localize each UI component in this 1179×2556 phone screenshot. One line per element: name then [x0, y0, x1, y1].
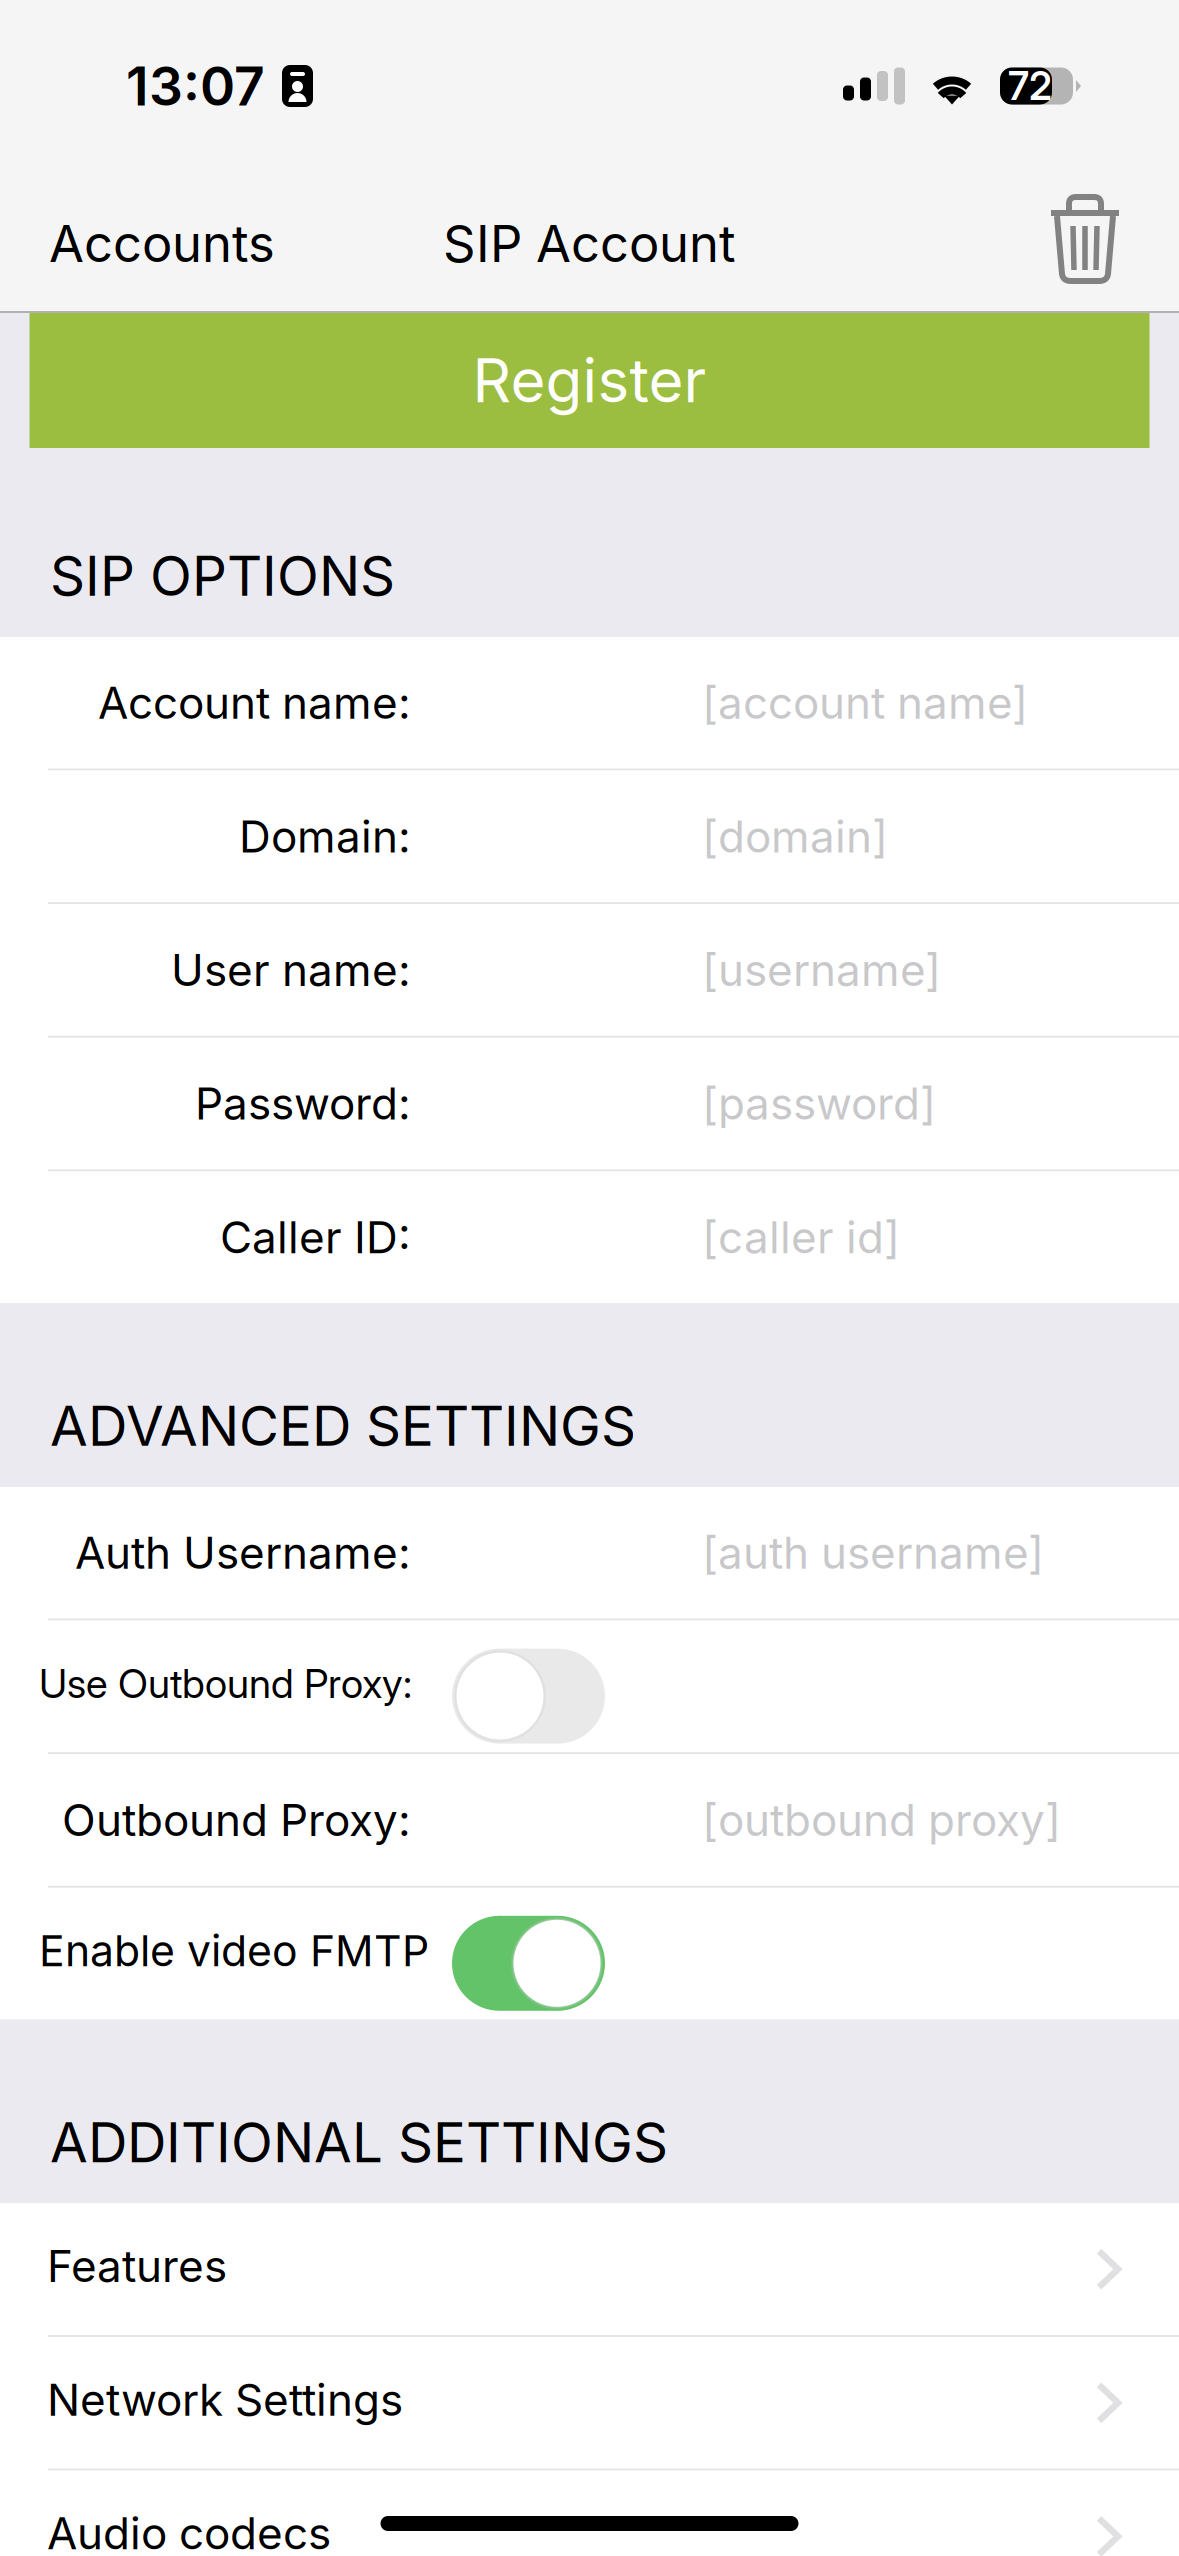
staticText: Network Settings — [47, 2373, 403, 2426]
staticText: Audio codecs — [47, 2507, 331, 2556]
staticText: [account name] — [702, 676, 1028, 729]
button[interactable]: Enable video FMTP — [0, 1888, 1179, 2019]
staticText: [domain] — [702, 810, 888, 863]
staticText: Auth Username: — [75, 1526, 411, 1579]
staticText: 72 — [1008, 63, 1052, 109]
staticText: [caller id] — [702, 1211, 900, 1264]
staticText: Accounts — [49, 213, 275, 274]
button[interactable]: Features — [0, 2203, 1179, 2335]
staticText: Features — [47, 2239, 227, 2293]
staticText: ADDITIONAL SETTINGS — [50, 2109, 668, 2175]
staticText: [username] — [702, 943, 941, 997]
button[interactable]: Use Outbound Proxy: — [0, 1621, 1179, 1752]
staticText: Domain: — [239, 810, 411, 863]
staticText: SIP OPTIONS — [50, 543, 395, 609]
staticText: Register — [472, 344, 706, 417]
staticText: User name: — [171, 943, 411, 997]
staticText: Outbound Proxy: — [62, 1793, 411, 1847]
button[interactable]: Network Settings — [0, 2337, 1179, 2469]
button[interactable]: Delete account — [1047, 155, 1179, 311]
staticText: Account name: — [98, 676, 411, 729]
staticText: Caller ID: — [220, 1211, 411, 1264]
staticText: [password] — [702, 1077, 936, 1130]
staticText: Use Outbound Proxy: — [39, 1660, 412, 1708]
staticText: Enable video FMTP — [39, 1925, 429, 1976]
staticText: [outbound proxy] — [702, 1793, 1061, 1847]
staticText: [auth username] — [702, 1526, 1044, 1579]
staticText: ADVANCED SETTINGS — [50, 1393, 636, 1459]
staticText: Password: — [195, 1077, 411, 1130]
staticText: 13:07 — [126, 54, 265, 118]
button[interactable]: Register — [29, 313, 1149, 448]
staticText: SIP Account — [443, 213, 736, 274]
button[interactable]: Accounts — [0, 155, 299, 311]
button[interactable]: Audio codecs — [0, 2471, 1179, 2556]
